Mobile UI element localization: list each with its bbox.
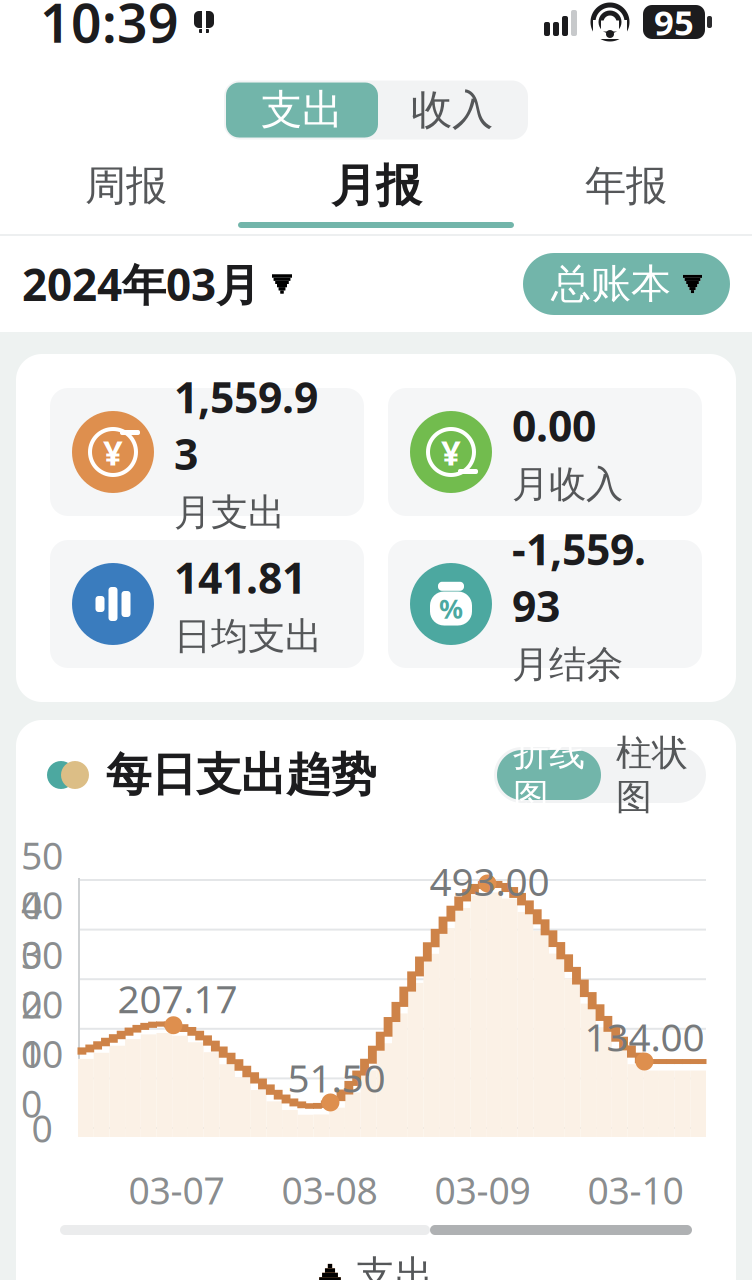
staticText: ¥ — [441, 429, 461, 475]
staticText: 400 — [21, 880, 63, 979]
button[interactable]: 折线图 — [497, 750, 601, 800]
staticText: 03-09 — [434, 1165, 530, 1215]
staticText: 200 — [21, 979, 63, 1078]
staticText: % — [439, 591, 463, 626]
staticText: ¥ — [103, 429, 123, 475]
staticText: 141.81 — [174, 549, 306, 605]
button[interactable]: 2024年03月 — [22, 245, 292, 323]
staticText: 支出 — [356, 1251, 434, 1280]
staticText: 月收入 — [512, 461, 623, 507]
staticText: 500 — [21, 830, 63, 930]
staticText: 03-07 — [128, 1165, 224, 1215]
staticText: 1,559.93 — [174, 368, 318, 482]
staticText: 493.00 — [429, 855, 549, 907]
button[interactable]: 支出 — [226, 82, 378, 137]
button[interactable]: 141.81 — [50, 540, 364, 668]
staticText: 折线图 — [513, 731, 585, 819]
button[interactable]: 月报 — [251, 150, 501, 234]
staticText: 收入 — [411, 85, 493, 135]
button[interactable]: 年报 — [501, 150, 751, 234]
staticText: 300 — [21, 930, 63, 1029]
staticText: 207.17 — [117, 973, 237, 1024]
staticText: 日均支出 — [174, 613, 322, 659]
button[interactable]: ¥ — [388, 388, 702, 516]
button[interactable]: 收入 — [378, 82, 526, 137]
staticText: 月报 — [331, 158, 421, 214]
button[interactable]: 总账本 — [523, 253, 730, 315]
button[interactable]: 周报 — [1, 150, 251, 234]
staticText: 95 — [654, 0, 694, 45]
staticText: 2024年03月 — [22, 255, 260, 313]
staticText: 总账本 — [551, 259, 671, 308]
staticText: 周报 — [85, 161, 167, 211]
staticText: 每日支出趋势 — [106, 747, 376, 803]
staticText: -1,559.93 — [512, 520, 646, 634]
button[interactable]: 柱状图 — [601, 750, 703, 800]
staticText: 月支出 — [174, 490, 285, 536]
staticText: 10:39 — [40, 0, 179, 57]
button[interactable]: % — [388, 540, 702, 668]
button[interactable]: ¥ — [50, 388, 364, 516]
staticText: 年报 — [585, 161, 667, 211]
staticText: 0.00 — [512, 397, 596, 453]
staticText: 03-10 — [587, 1165, 683, 1215]
staticText: 100 — [21, 1029, 63, 1128]
staticText: 0 — [31, 1103, 52, 1153]
staticText: 03-08 — [281, 1165, 377, 1215]
staticText: 柱状图 — [616, 731, 688, 819]
staticText: 月结余 — [512, 642, 623, 688]
staticText: 51.50 — [287, 1052, 385, 1103]
staticText: 134.00 — [584, 1011, 704, 1062]
staticText: 支出 — [261, 85, 343, 135]
